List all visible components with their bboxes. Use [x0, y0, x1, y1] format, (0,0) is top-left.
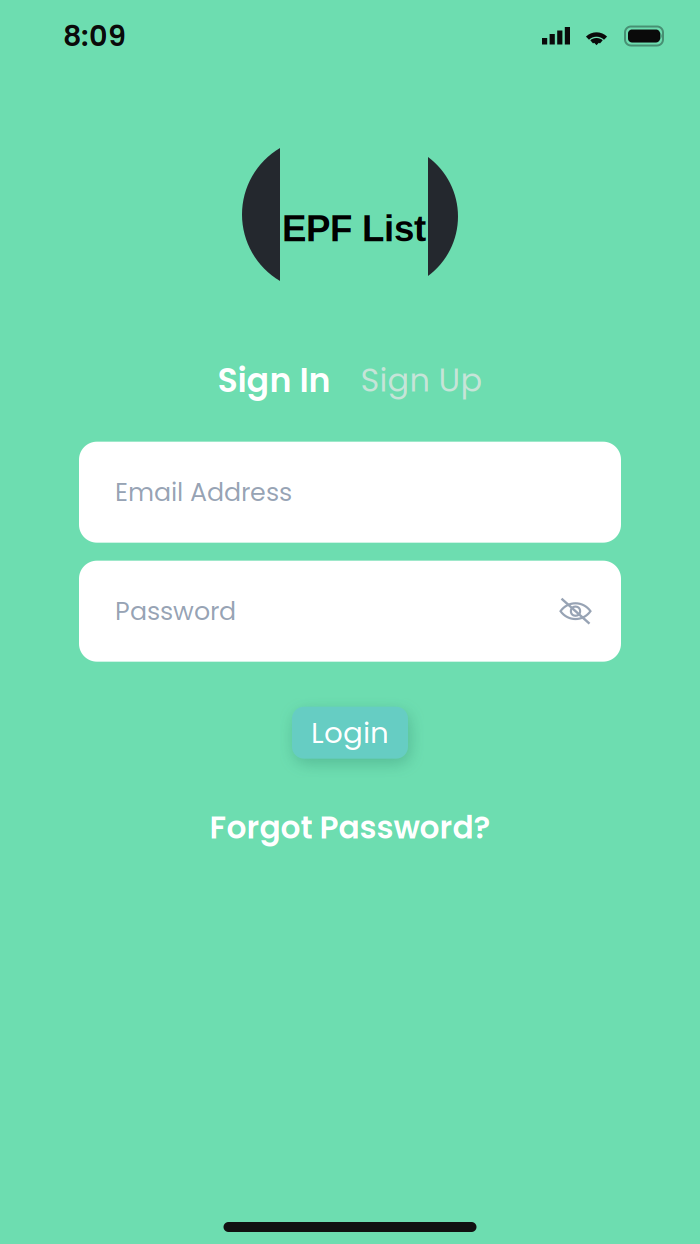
button[interactable]: Login [292, 707, 408, 759]
button[interactable]: Sign Up [360, 358, 482, 403]
staticText: 8:09 [63, 16, 126, 56]
staticText: Password [115, 593, 236, 629]
staticText: Email Address [115, 474, 292, 510]
button[interactable]: Forgot Password? [209, 806, 490, 850]
staticText: Sign Up [360, 358, 482, 403]
staticText: Login [311, 712, 389, 753]
staticText: Sign In [217, 357, 330, 404]
staticText: Forgot Password? [209, 806, 490, 850]
button[interactable]: Show password [559, 600, 592, 622]
button[interactable]: Sign In [217, 357, 330, 404]
staticText: EPF List [282, 208, 426, 249]
